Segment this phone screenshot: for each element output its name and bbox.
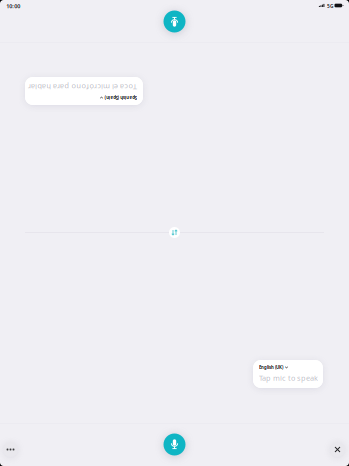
button[interactable]: English (UK): [253, 360, 323, 388]
staticText: 10:00: [6, 2, 20, 10]
button[interactable]: English (UK): [259, 364, 288, 370]
staticText: Tap mic to speak: [259, 373, 318, 383]
button[interactable]: Close: [330, 442, 345, 457]
button[interactable]: Microphone: [163, 10, 185, 32]
staticText: 5G: [327, 3, 333, 9]
button[interactable]: Swap languages: [169, 227, 180, 238]
staticText: Spanish (Spain): [31, 81, 63, 87]
button[interactable]: Microphone: [163, 433, 185, 455]
button[interactable]: Spanish (Spain): [25, 77, 143, 105]
staticText: Toca el micrófono para hablar: [31, 90, 140, 100]
staticText: English (UK): [259, 364, 283, 370]
button[interactable]: More options: [3, 442, 18, 457]
button[interactable]: Spanish (Spain): [31, 81, 68, 87]
